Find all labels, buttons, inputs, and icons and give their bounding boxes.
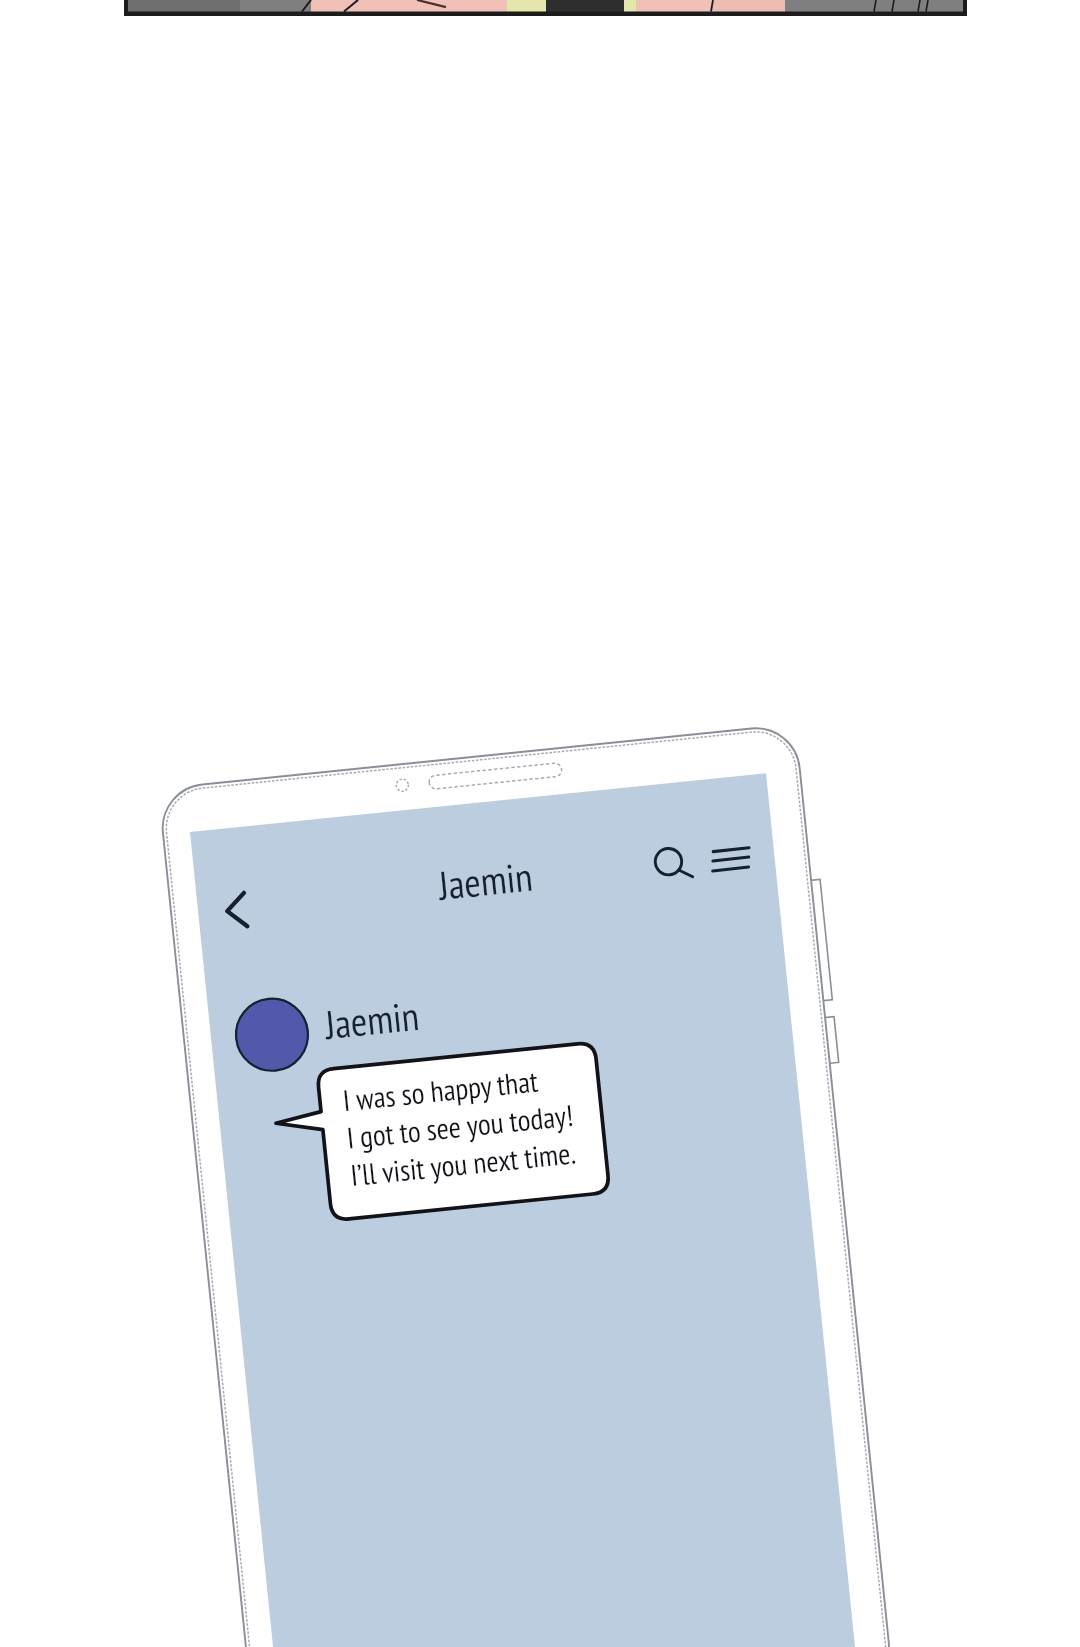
button[interactable]: Search [643,836,698,891]
button[interactable] [265,1037,614,1230]
button[interactable]: Back [206,880,271,942]
button[interactable] [227,981,429,1079]
button[interactable]: Menu [701,829,763,885]
